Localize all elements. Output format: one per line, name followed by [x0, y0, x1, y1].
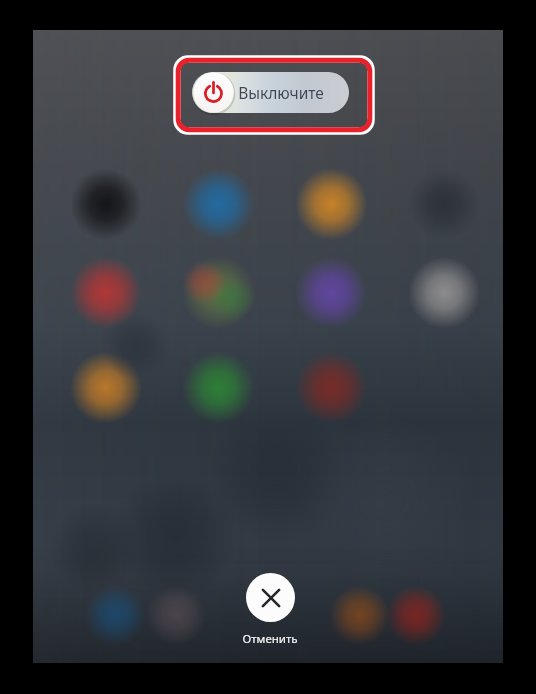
- button[interactable]: Power off: [192, 71, 235, 114]
- staticText: Отменить: [242, 631, 298, 647]
- button[interactable]: Отменить: [242, 573, 298, 647]
- staticText: Выключите: [238, 82, 324, 103]
- button[interactable]: Выключите: [192, 72, 349, 113]
- other: Отменить: [246, 573, 295, 622]
